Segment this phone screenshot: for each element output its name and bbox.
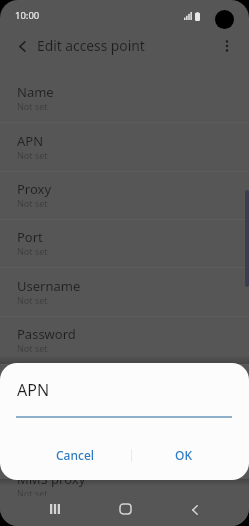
- staticText: APN: [17, 379, 50, 401]
- button[interactable]: Back: [172, 495, 218, 525]
- button[interactable]: OK: [132, 442, 234, 468]
- staticText: Port: [17, 228, 43, 246]
- staticText: Username: [17, 277, 81, 295]
- staticText: Proxy: [17, 180, 52, 198]
- button[interactable]: Cancel: [19, 442, 131, 468]
- button[interactable]: Name: [0, 74, 249, 122]
- staticText: Not set: [17, 294, 48, 306]
- staticText: Not set: [17, 487, 48, 499]
- staticText: 10:00: [15, 9, 40, 22]
- staticText: Edit access point: [37, 36, 145, 55]
- button[interactable]: Password: [0, 316, 249, 364]
- staticText: Server: [17, 373, 57, 391]
- staticText: Name: [17, 83, 54, 101]
- button[interactable]: Back: [6, 30, 38, 62]
- staticText: Not set: [17, 245, 48, 257]
- staticText: Not set: [17, 149, 48, 161]
- staticText: Not set: [17, 197, 48, 209]
- staticText: Password: [17, 325, 76, 343]
- button[interactable]: MMS proxy: [0, 461, 249, 509]
- button[interactable]: More options: [211, 30, 243, 62]
- button[interactable]: MMS port: [0, 509, 249, 526]
- button[interactable]: Username: [0, 268, 249, 316]
- staticText: Not set: [17, 390, 48, 402]
- staticText: Not set: [17, 342, 48, 354]
- staticText: APN: [17, 132, 44, 150]
- button[interactable]: Server: [0, 364, 249, 412]
- button[interactable]: Recent apps: [32, 494, 78, 524]
- staticText: MMS proxy: [17, 470, 86, 488]
- staticText: Not set: [17, 100, 48, 112]
- button[interactable]: Proxy: [0, 171, 249, 219]
- button[interactable]: MMSC: [0, 413, 249, 461]
- button[interactable]: Home: [102, 494, 148, 524]
- staticText: Cancel: [56, 447, 95, 463]
- button[interactable]: Port: [0, 219, 249, 267]
- staticText: OK: [175, 447, 192, 463]
- button[interactable]: APN: [0, 123, 249, 171]
